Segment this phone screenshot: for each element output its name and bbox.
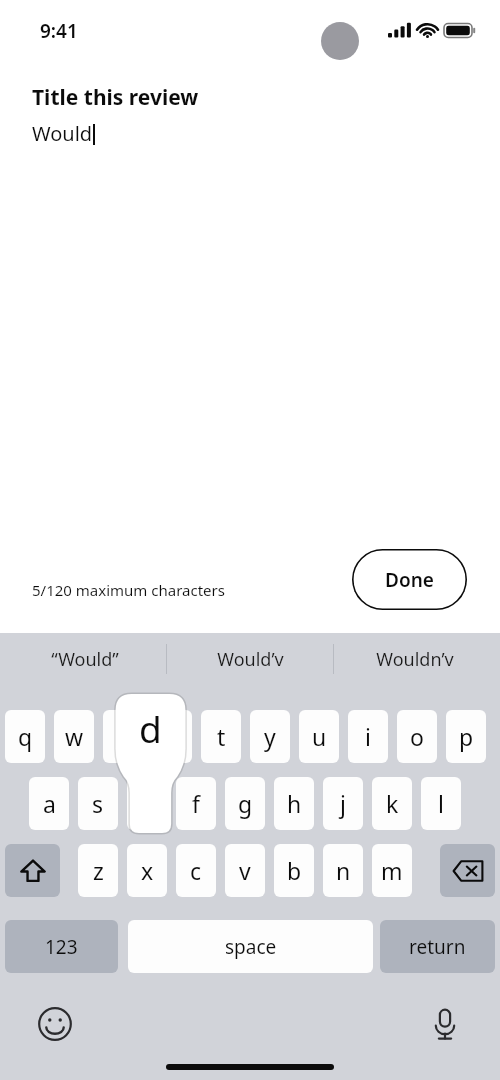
button[interactable]: r [152, 710, 192, 763]
staticText: q [18, 721, 33, 752]
button[interactable]: g [225, 777, 265, 830]
button[interactable]: s [78, 777, 118, 830]
staticText: g [238, 788, 253, 819]
button[interactable]: space [128, 920, 373, 973]
button[interactable]: 123 [5, 920, 118, 973]
button[interactable]: d [127, 777, 167, 830]
staticText: space [225, 934, 277, 960]
staticText: y [264, 721, 276, 752]
staticText: d [139, 703, 162, 753]
button[interactable]: n [323, 844, 363, 897]
button[interactable]: y [250, 710, 290, 763]
button[interactable]: Dictate [422, 1001, 468, 1047]
staticText: z [93, 855, 104, 886]
staticText: a [43, 788, 56, 819]
staticText: w [65, 721, 84, 752]
button[interactable]: i [348, 710, 388, 763]
button[interactable]: “Would” [7, 633, 163, 685]
button[interactable]: a [29, 777, 69, 830]
button[interactable]: k [372, 777, 412, 830]
staticText: 9:41 [40, 18, 78, 44]
button[interactable]: Emoji [32, 1001, 78, 1047]
staticText: j [340, 788, 346, 819]
staticText: i [365, 721, 371, 752]
button[interactable]: e [103, 710, 143, 763]
staticText: Done [385, 567, 434, 593]
button[interactable]: v [225, 844, 265, 897]
button[interactable]: x [127, 844, 167, 897]
button[interactable]: c [176, 844, 216, 897]
staticText: s [92, 788, 104, 819]
staticText: p [459, 721, 474, 752]
button[interactable]: Would’v [172, 633, 328, 685]
button[interactable]: Wouldn’v [337, 633, 493, 685]
staticText: o [410, 721, 424, 752]
staticText: “Would” [51, 647, 119, 672]
staticText: Would [32, 120, 93, 147]
button[interactable]: w [54, 710, 94, 763]
staticText: k [386, 788, 399, 819]
staticText: n [336, 855, 351, 886]
button[interactable]: z [78, 844, 118, 897]
button[interactable]: Backspace [440, 844, 495, 897]
staticText: h [287, 788, 302, 819]
staticText: m [381, 855, 403, 886]
button[interactable]: p [446, 710, 486, 763]
staticText: 123 [45, 934, 78, 960]
button[interactable]: return [380, 920, 495, 973]
staticText: v [239, 855, 251, 886]
button[interactable]: u [299, 710, 339, 763]
staticText: 5/120 maximum characters [32, 580, 225, 600]
staticText: f [192, 788, 200, 819]
staticText: u [312, 721, 327, 752]
staticText: Wouldn’v [376, 647, 454, 672]
button[interactable]: h [274, 777, 314, 830]
staticText: return [409, 934, 466, 960]
staticText: x [141, 855, 154, 886]
staticText: Title this review [32, 83, 199, 112]
staticText: c [190, 855, 202, 886]
button[interactable]: Done [352, 549, 467, 610]
staticText: t [217, 721, 226, 752]
button[interactable]: j [323, 777, 363, 830]
button[interactable]: b [274, 844, 314, 897]
button[interactable]: q [5, 710, 45, 763]
staticText: Would’v [217, 647, 284, 672]
button[interactable]: t [201, 710, 241, 763]
button[interactable]: l [421, 777, 461, 830]
staticText: b [287, 855, 302, 886]
button[interactable]: Shift [5, 844, 60, 897]
button[interactable]: f [176, 777, 216, 830]
staticText: l [438, 788, 444, 819]
button[interactable]: m [372, 844, 412, 897]
button[interactable]: o [397, 710, 437, 763]
